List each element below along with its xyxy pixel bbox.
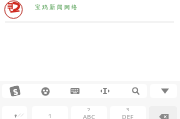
staticText: 宝鸡新闻网络 <box>35 4 79 11</box>
button[interactable]: 宝鸡新闻网络 <box>35 2 81 12</box>
button[interactable]: Search <box>121 84 149 98</box>
button[interactable]: Emoji <box>31 84 59 98</box>
button[interactable]: 2 <box>71 106 107 119</box>
button[interactable]: Move cursor <box>91 84 119 98</box>
staticText: 3 <box>126 106 130 111</box>
button[interactable]: Hide keyboard <box>151 84 179 98</box>
button[interactable]: 1 <box>32 106 68 119</box>
staticText: DEF <box>122 113 134 119</box>
button[interactable]: Sogou input settings <box>1 84 29 98</box>
staticText: 2 <box>87 106 91 111</box>
button[interactable]: Punctuation <box>2 106 27 119</box>
button[interactable]: Site logo <box>4 0 23 19</box>
staticText: 1 <box>48 111 53 118</box>
button[interactable]: Keyboard layout <box>61 84 89 98</box>
button[interactable]: 3 <box>110 106 146 119</box>
button[interactable]: Backspace <box>149 106 177 119</box>
staticText: ABC <box>83 113 96 119</box>
staticText: S <box>12 85 19 96</box>
